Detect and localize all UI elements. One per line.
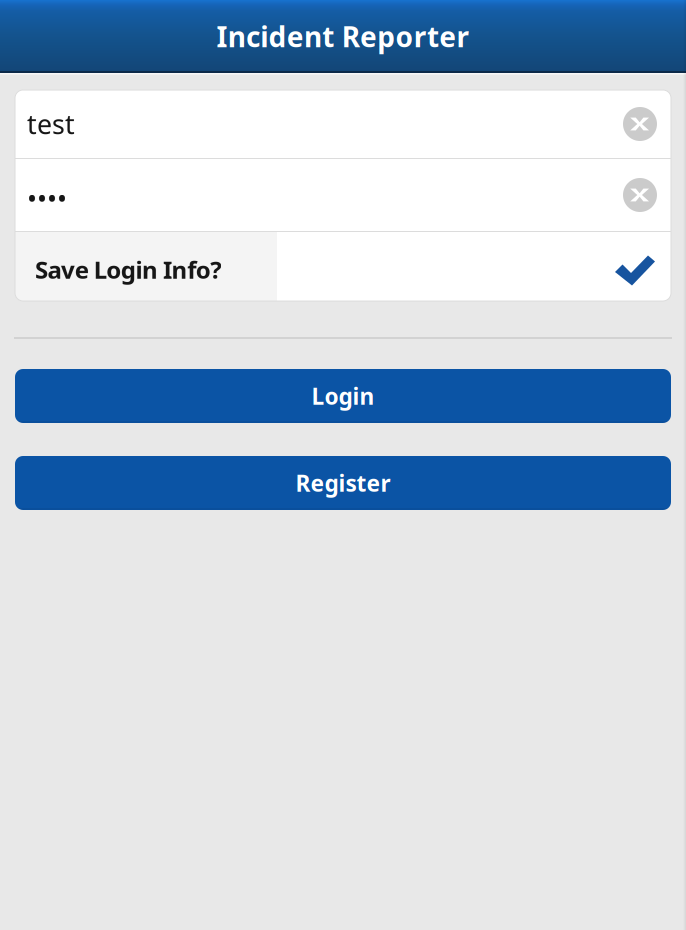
staticText: •••• xyxy=(27,181,67,216)
staticText: Save Login Info? xyxy=(35,254,221,285)
button[interactable]: Username xyxy=(15,90,616,158)
button[interactable]: Password xyxy=(15,159,616,231)
button[interactable]: Clear text xyxy=(616,100,664,148)
button[interactable]: Save Login Info? xyxy=(15,232,671,301)
staticText: Register xyxy=(295,468,390,498)
button[interactable]: Register xyxy=(15,456,671,510)
staticText: Login xyxy=(311,381,374,411)
button[interactable]: Login xyxy=(15,369,671,423)
button[interactable]: Clear text xyxy=(616,171,664,219)
staticText: test xyxy=(27,106,75,142)
staticText: Incident Reporter xyxy=(216,18,469,55)
